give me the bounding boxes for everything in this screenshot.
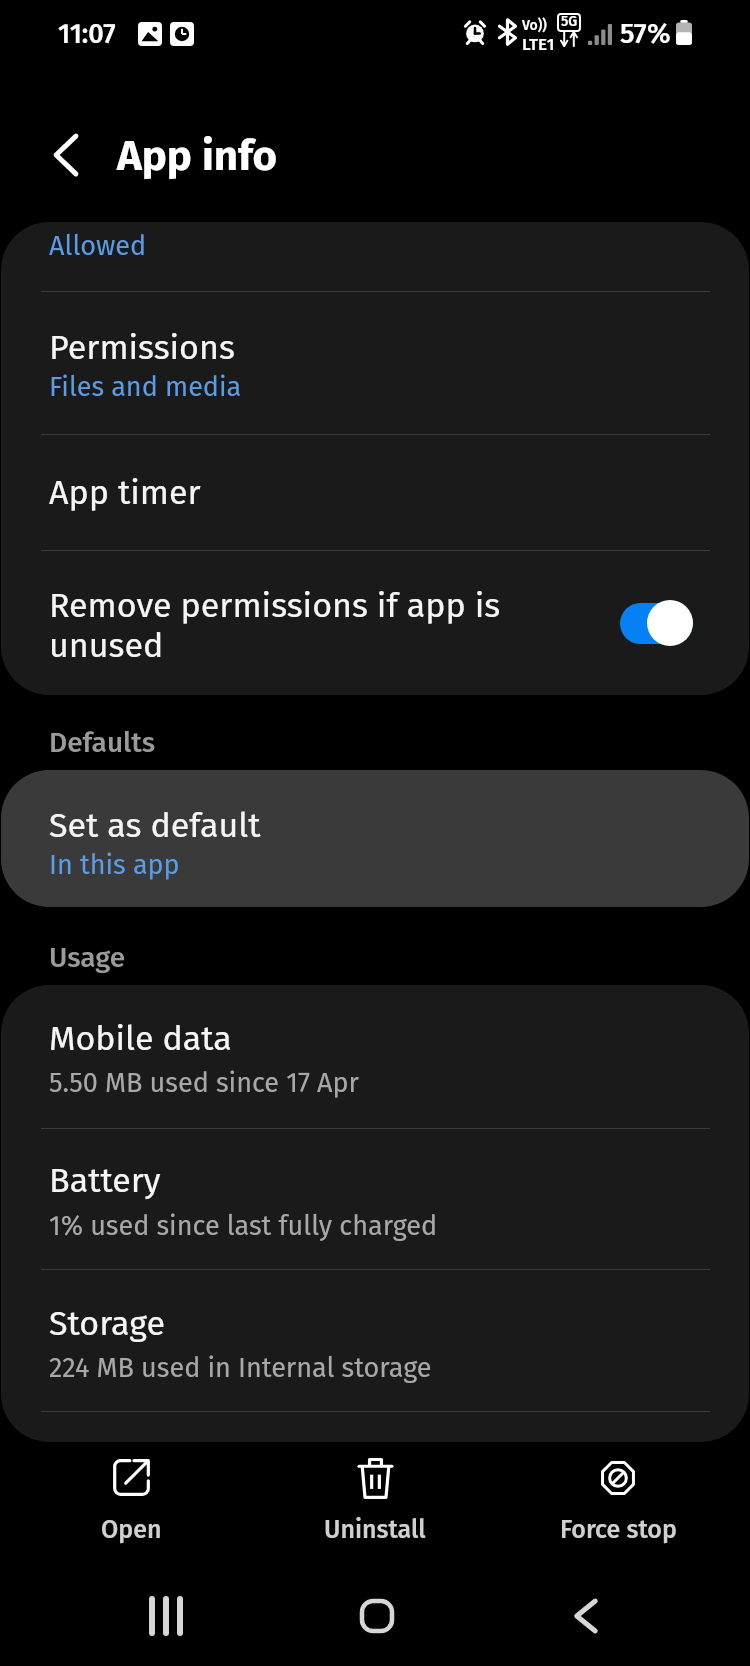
staticText: App timer: [49, 472, 201, 513]
staticText: 11:07: [58, 18, 116, 50]
staticText: Permissions: [49, 327, 235, 368]
button[interactable]: Home: [277, 1574, 477, 1666]
button[interactable]: App timer: [1, 435, 749, 550]
staticText: Remove permissions if app is unused: [49, 585, 620, 666]
staticText: 224 MB used in Internal storage: [49, 1352, 432, 1384]
staticText: 5.50 MB used since 17 Apr: [49, 1067, 359, 1099]
button[interactable]: Allowed: [1, 222, 749, 291]
button[interactable]: Recent apps: [66, 1574, 266, 1666]
button[interactable]: Force stop: [508, 1444, 728, 1574]
button[interactable]: Storage: [1, 1270, 749, 1411]
button[interactable]: Uninstall: [265, 1444, 485, 1574]
button[interactable]: Open: [21, 1444, 241, 1574]
staticText: 57%: [620, 17, 671, 51]
staticText: 5G: [561, 13, 578, 30]
staticText: 1% used since last fully charged: [49, 1210, 438, 1242]
staticText: In this app: [49, 849, 180, 881]
staticText: Allowed: [49, 230, 147, 262]
staticText: App info: [117, 131, 278, 181]
staticText: Uninstall: [324, 1515, 426, 1545]
button[interactable]: Remove permissions if app is unused: [1, 551, 749, 695]
staticText: Defaults: [49, 726, 156, 760]
staticText: Mobile data: [49, 1018, 232, 1059]
staticText: Battery: [49, 1160, 161, 1201]
staticText: Storage: [49, 1303, 165, 1344]
button[interactable]: Navigate up: [25, 114, 107, 196]
button[interactable]: Set as default: [1, 770, 749, 907]
button[interactable]: Permissions: [1, 292, 749, 434]
staticText: Force stop: [560, 1515, 677, 1545]
staticText: LTE1: [522, 34, 555, 54]
staticText: Files and media: [49, 371, 242, 403]
button[interactable]: Mobile data: [1, 985, 749, 1128]
staticText: Set as default: [49, 805, 261, 846]
button[interactable]: Back: [486, 1574, 686, 1666]
staticText: Open: [101, 1515, 162, 1545]
staticText: Vo)): [522, 17, 547, 34]
button[interactable]: Battery: [1, 1129, 749, 1269]
staticText: Usage: [49, 941, 126, 975]
